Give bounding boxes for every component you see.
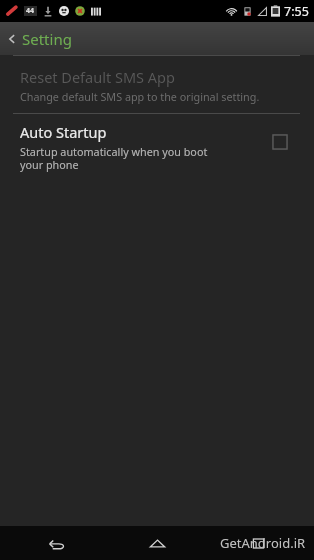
button[interactable]: Auto Startup — [0, 114, 314, 526]
button[interactable]: Home — [112, 526, 202, 560]
other: Auto Startup — [260, 134, 300, 526]
staticText: 44 — [26, 6, 35, 16]
staticText: Auto Startup — [20, 122, 107, 142]
staticText: GetAndroid.iR — [220, 534, 306, 552]
staticText: Setting — [22, 29, 72, 49]
button[interactable]: Reset Default SMS App — [0, 56, 314, 113]
button[interactable]: Back to Setting — [0, 22, 314, 55]
staticText: Startup automatically when you boot your… — [20, 144, 208, 172]
staticText: 7:55 — [284, 3, 309, 20]
button[interactable]: Recent apps — [213, 526, 303, 560]
button[interactable]: Back — [11, 526, 101, 560]
staticText: Change default SMS app to the original s… — [20, 89, 260, 104]
staticText: Reset Default SMS App — [20, 67, 175, 87]
